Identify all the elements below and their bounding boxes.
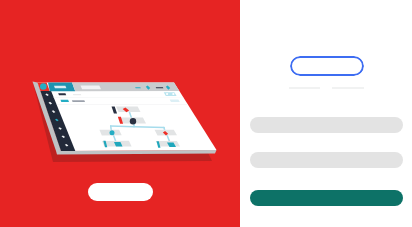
button[interactable]: Get started (88, 183, 153, 201)
button[interactable]: Continue (250, 190, 403, 206)
button[interactable]: Option two (250, 152, 403, 168)
button[interactable]: Option one (250, 117, 403, 133)
button[interactable]: Input field (290, 56, 364, 76)
